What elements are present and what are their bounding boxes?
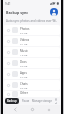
staticText: Help [55,98,58,104]
staticText: 3.1 GB [20,42,28,45]
button[interactable]: Music [4,47,60,57]
button[interactable]: Chats [4,80,60,90]
button[interactable]: Videos [4,36,60,46]
staticText: Photos [20,27,30,31]
button[interactable]: Recents [44,105,53,114]
staticText: Music [20,49,28,53]
staticText: 0.6 GB [20,86,28,89]
button[interactable]: Home [28,105,37,114]
staticText: 2.4 GB [20,75,28,78]
staticText: 5.2 GB [20,31,28,34]
button[interactable]: Docs [4,58,60,68]
staticText: Auto-sync photos and videos over Wi-Fi [6,19,58,23]
staticText: Other [20,91,28,95]
button[interactable]: Photos [4,25,60,35]
button[interactable]: Back [11,105,20,114]
staticText: Backup sync [6,10,29,15]
button[interactable]: Help [54,97,59,105]
button[interactable]: Account [50,8,58,16]
button[interactable]: Other [4,91,60,97]
staticText: Apps [20,71,27,75]
staticText: Manage storage [32,99,52,103]
staticText: Chats [20,82,28,86]
button[interactable]: Auto-sync photos and videos over Wi-Fi [6,17,58,24]
staticText: Pause [22,99,30,103]
staticText: 0.9 GB [20,64,28,67]
button[interactable]: Pause [21,98,31,104]
staticText: 1.8 GB [20,53,28,56]
staticText: Back up [7,99,17,103]
button[interactable]: Back up [5,98,19,104]
staticText: Videos [20,38,30,42]
button[interactable]: Apps [4,69,60,79]
staticText: 9:41 [5,2,11,6]
button[interactable]: Manage storage [31,98,53,104]
staticText: Docs [20,60,27,64]
